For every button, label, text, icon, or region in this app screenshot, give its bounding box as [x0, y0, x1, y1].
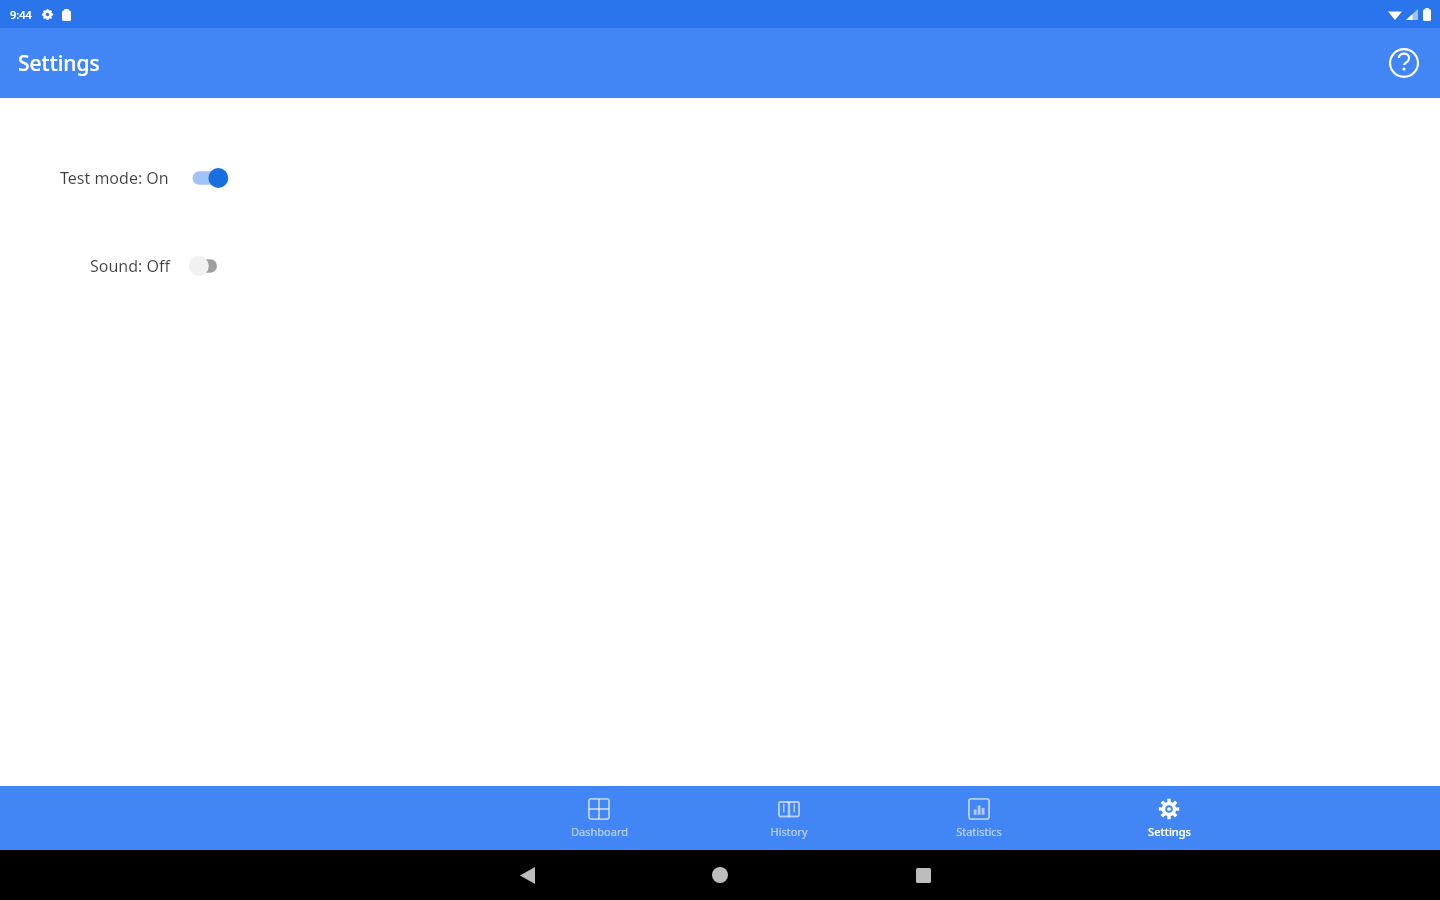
staticText: Settings — [1148, 824, 1191, 839]
button[interactable]: Recents — [901, 853, 945, 897]
button[interactable]: Settings — [1074, 786, 1264, 850]
staticText: Sound: Off — [90, 255, 171, 277]
staticText: Dashboard — [571, 824, 628, 839]
button[interactable]: Help — [1382, 41, 1426, 85]
button[interactable]: Sound: Off — [90, 244, 235, 288]
staticText: 9:44 — [10, 7, 32, 22]
button[interactable]: Home — [698, 853, 742, 897]
button[interactable]: History — [694, 786, 884, 850]
staticText: History — [770, 824, 808, 839]
staticText: Test mode: On — [60, 167, 169, 189]
button[interactable]: Back — [505, 853, 549, 897]
staticText: Settings — [18, 49, 100, 78]
button[interactable]: Statistics — [884, 786, 1074, 850]
staticText: Statistics — [956, 824, 1002, 839]
button[interactable]: Dashboard — [504, 786, 694, 850]
button[interactable]: Test mode: On — [60, 156, 237, 200]
